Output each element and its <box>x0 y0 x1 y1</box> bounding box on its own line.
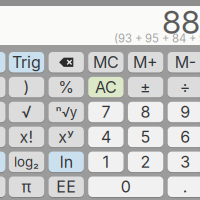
staticText: 8 <box>141 102 151 122</box>
button[interactable]: 1 <box>88 151 124 173</box>
staticText: √ <box>21 102 31 122</box>
staticText: x! <box>19 127 33 147</box>
staticText: 2 <box>141 152 151 172</box>
staticText: % <box>58 77 74 97</box>
staticText: 4 <box>101 127 111 147</box>
staticText: 88 <box>162 3 200 41</box>
staticText: 7 <box>101 102 110 122</box>
staticText: ) <box>23 77 29 97</box>
button[interactable]: log₂ <box>9 151 44 173</box>
button[interactable]: 9 <box>168 101 200 123</box>
staticText: 6 <box>180 127 190 147</box>
button[interactable]: 7 <box>88 101 124 123</box>
button[interactable]: x! <box>9 126 44 148</box>
button[interactable]: ln <box>48 151 84 173</box>
staticText: AC <box>95 77 117 97</box>
staticText: Trig <box>12 53 41 72</box>
staticText: 5 <box>141 127 151 147</box>
button[interactable]: ) <box>9 76 44 98</box>
staticText: EE <box>56 177 76 196</box>
button[interactable]: ÷ <box>168 76 200 98</box>
button[interactable]: 6 <box>168 126 200 148</box>
button[interactable]: 0 <box>88 176 163 198</box>
button[interactable]: xʸ <box>48 126 84 148</box>
button[interactable]: M+ <box>128 51 163 73</box>
button[interactable]: % <box>48 76 84 98</box>
staticText: ⁿ√y <box>56 104 77 120</box>
staticText: (93 + 95 + 84 + 9 <box>114 32 200 45</box>
staticText: MC <box>93 53 119 72</box>
button[interactable]: Delete <box>48 51 84 73</box>
button[interactable]: M- <box>168 51 200 73</box>
staticText: M+ <box>133 53 158 72</box>
staticText: xʸ <box>58 127 74 147</box>
button[interactable]: 8 <box>128 101 163 123</box>
staticText: . <box>183 177 188 196</box>
button[interactable]: ± <box>128 76 163 98</box>
staticText: 0 <box>121 177 131 196</box>
button[interactable]: . <box>168 176 200 198</box>
button[interactable]: 5 <box>128 126 163 148</box>
staticText: π <box>21 177 31 196</box>
button[interactable]: EE <box>48 176 84 198</box>
staticText: 1 <box>102 152 109 172</box>
button[interactable]: Trig <box>9 51 44 73</box>
staticText: ± <box>140 77 151 97</box>
button[interactable]: AC <box>88 76 124 98</box>
staticText: 3 <box>180 152 190 172</box>
button[interactable]: MC <box>88 51 124 73</box>
button[interactable]: 2 <box>128 151 163 173</box>
staticText: log₂ <box>14 154 39 170</box>
staticText: ÷ <box>180 77 191 97</box>
button[interactable]: ⁿ√y <box>48 101 84 123</box>
staticText: M- <box>175 53 196 72</box>
button[interactable]: π <box>9 176 44 198</box>
staticText: ln <box>60 152 73 172</box>
button[interactable]: 4 <box>88 126 124 148</box>
button[interactable]: √ <box>9 101 44 123</box>
button[interactable]: 3 <box>168 151 200 173</box>
staticText: 9 <box>180 102 190 122</box>
